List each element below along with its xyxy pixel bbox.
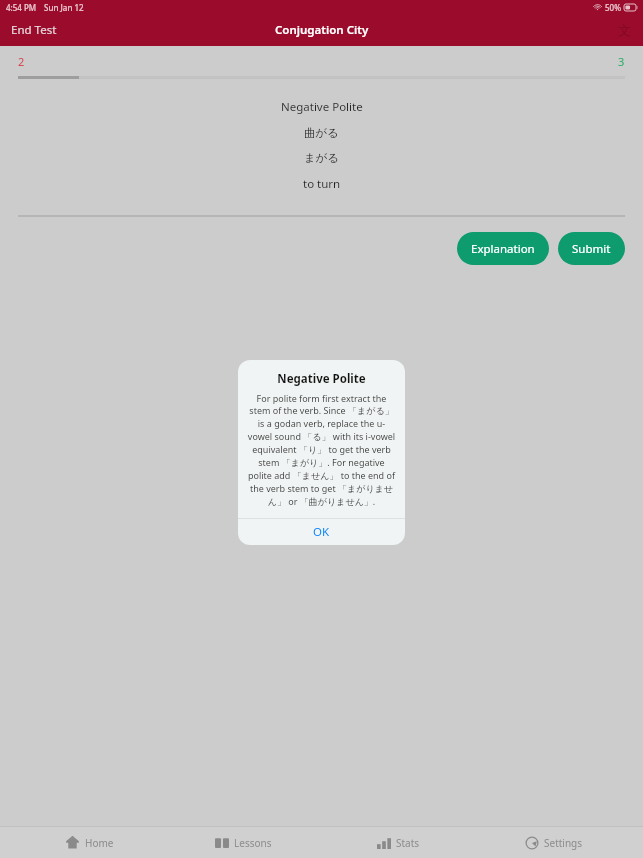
button[interactable]: OK	[238, 519, 405, 545]
staticText: 文	[618, 22, 631, 38]
staticText: Conjugation City	[275, 22, 369, 38]
staticText: 3	[618, 54, 625, 69]
staticText: 4:54 PM	[6, 2, 37, 13]
staticText: 曲がる	[304, 126, 340, 140]
button[interactable]: Japanese text settings	[606, 14, 643, 46]
staticText: まがる	[304, 151, 340, 165]
button[interactable]: Settings	[476, 827, 631, 858]
button[interactable]: Explanation	[457, 232, 549, 265]
staticText: Settings	[544, 836, 583, 850]
staticText: For polite form first extract the stem o…	[246, 392, 397, 508]
button[interactable]: Lessons	[166, 827, 321, 858]
staticText: Negative Polite	[238, 371, 405, 387]
button[interactable]: Stats	[321, 827, 476, 858]
staticText: Sun Jan 12	[44, 2, 84, 13]
staticText: Submit	[572, 241, 611, 257]
staticText: Negative Polite	[281, 99, 363, 115]
staticText: Home	[85, 836, 114, 850]
staticText: to turn	[303, 176, 341, 192]
staticText: 50%	[605, 2, 621, 13]
button[interactable]: End Test	[0, 14, 68, 46]
staticText: 2	[18, 54, 25, 69]
staticText: Lessons	[234, 836, 272, 850]
button[interactable]: Home	[12, 827, 166, 858]
button[interactable]: Submit	[558, 232, 625, 265]
staticText: End Test	[11, 22, 57, 38]
staticText: Stats	[396, 836, 420, 850]
staticText: Explanation	[471, 241, 535, 257]
staticText: OK	[313, 524, 330, 540]
